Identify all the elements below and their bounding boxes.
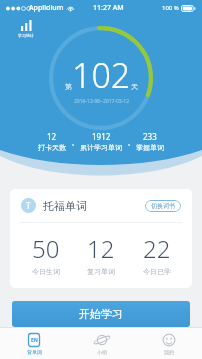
staticText: EN xyxy=(31,337,38,344)
button[interactable]: 学习统计 xyxy=(11,20,41,50)
staticText: Applidium xyxy=(29,3,64,13)
staticText: 掌握单词 xyxy=(136,143,164,152)
button[interactable]: 切换词书 xyxy=(145,200,181,212)
staticText: 学习统计 xyxy=(18,33,34,38)
staticText: 1912 xyxy=(92,131,111,142)
button[interactable]: 背单词 xyxy=(0,328,68,359)
button[interactable]: 233 xyxy=(136,131,164,152)
staticText: 累计学习单词 xyxy=(80,143,122,152)
staticText: 100 % xyxy=(162,4,179,12)
button[interactable]: 50 xyxy=(26,232,66,276)
button[interactable]: T xyxy=(10,189,192,288)
button[interactable]: 1912 xyxy=(80,131,122,152)
staticText: 233 xyxy=(143,131,157,142)
staticText: 50 xyxy=(32,232,60,265)
staticText: 开始学习 xyxy=(79,307,123,321)
staticText: 第 xyxy=(65,82,72,91)
staticText: 托福单词 xyxy=(43,199,87,213)
button[interactable]: 小组 xyxy=(68,328,135,359)
staticText: 12 xyxy=(47,131,57,142)
staticText: 11:27 AM xyxy=(93,3,124,13)
staticText: 今日生词 xyxy=(32,267,60,276)
staticText: 切换词书 xyxy=(151,202,175,210)
staticText: 22 xyxy=(143,232,171,265)
staticText: 复习单词 xyxy=(87,267,115,276)
staticText: 12 xyxy=(87,232,115,265)
staticText: 小组 xyxy=(97,349,107,355)
staticText: 102 xyxy=(72,52,131,98)
staticText: 我的 xyxy=(164,349,174,355)
button[interactable]: 开始学习 xyxy=(12,301,190,327)
staticText: 背单词 xyxy=(27,349,42,355)
button[interactable]: 12 xyxy=(81,232,121,276)
staticText: T xyxy=(26,200,31,211)
button[interactable]: 12 xyxy=(38,131,66,152)
staticText: 今日已学 xyxy=(143,267,171,276)
staticText: 2016-12-06~2017-03-12 xyxy=(74,98,130,105)
staticText: 天 xyxy=(131,82,138,91)
staticText: 打卡天数 xyxy=(38,143,66,152)
button[interactable]: 22 xyxy=(137,232,177,276)
button[interactable]: 我的 xyxy=(135,328,202,359)
